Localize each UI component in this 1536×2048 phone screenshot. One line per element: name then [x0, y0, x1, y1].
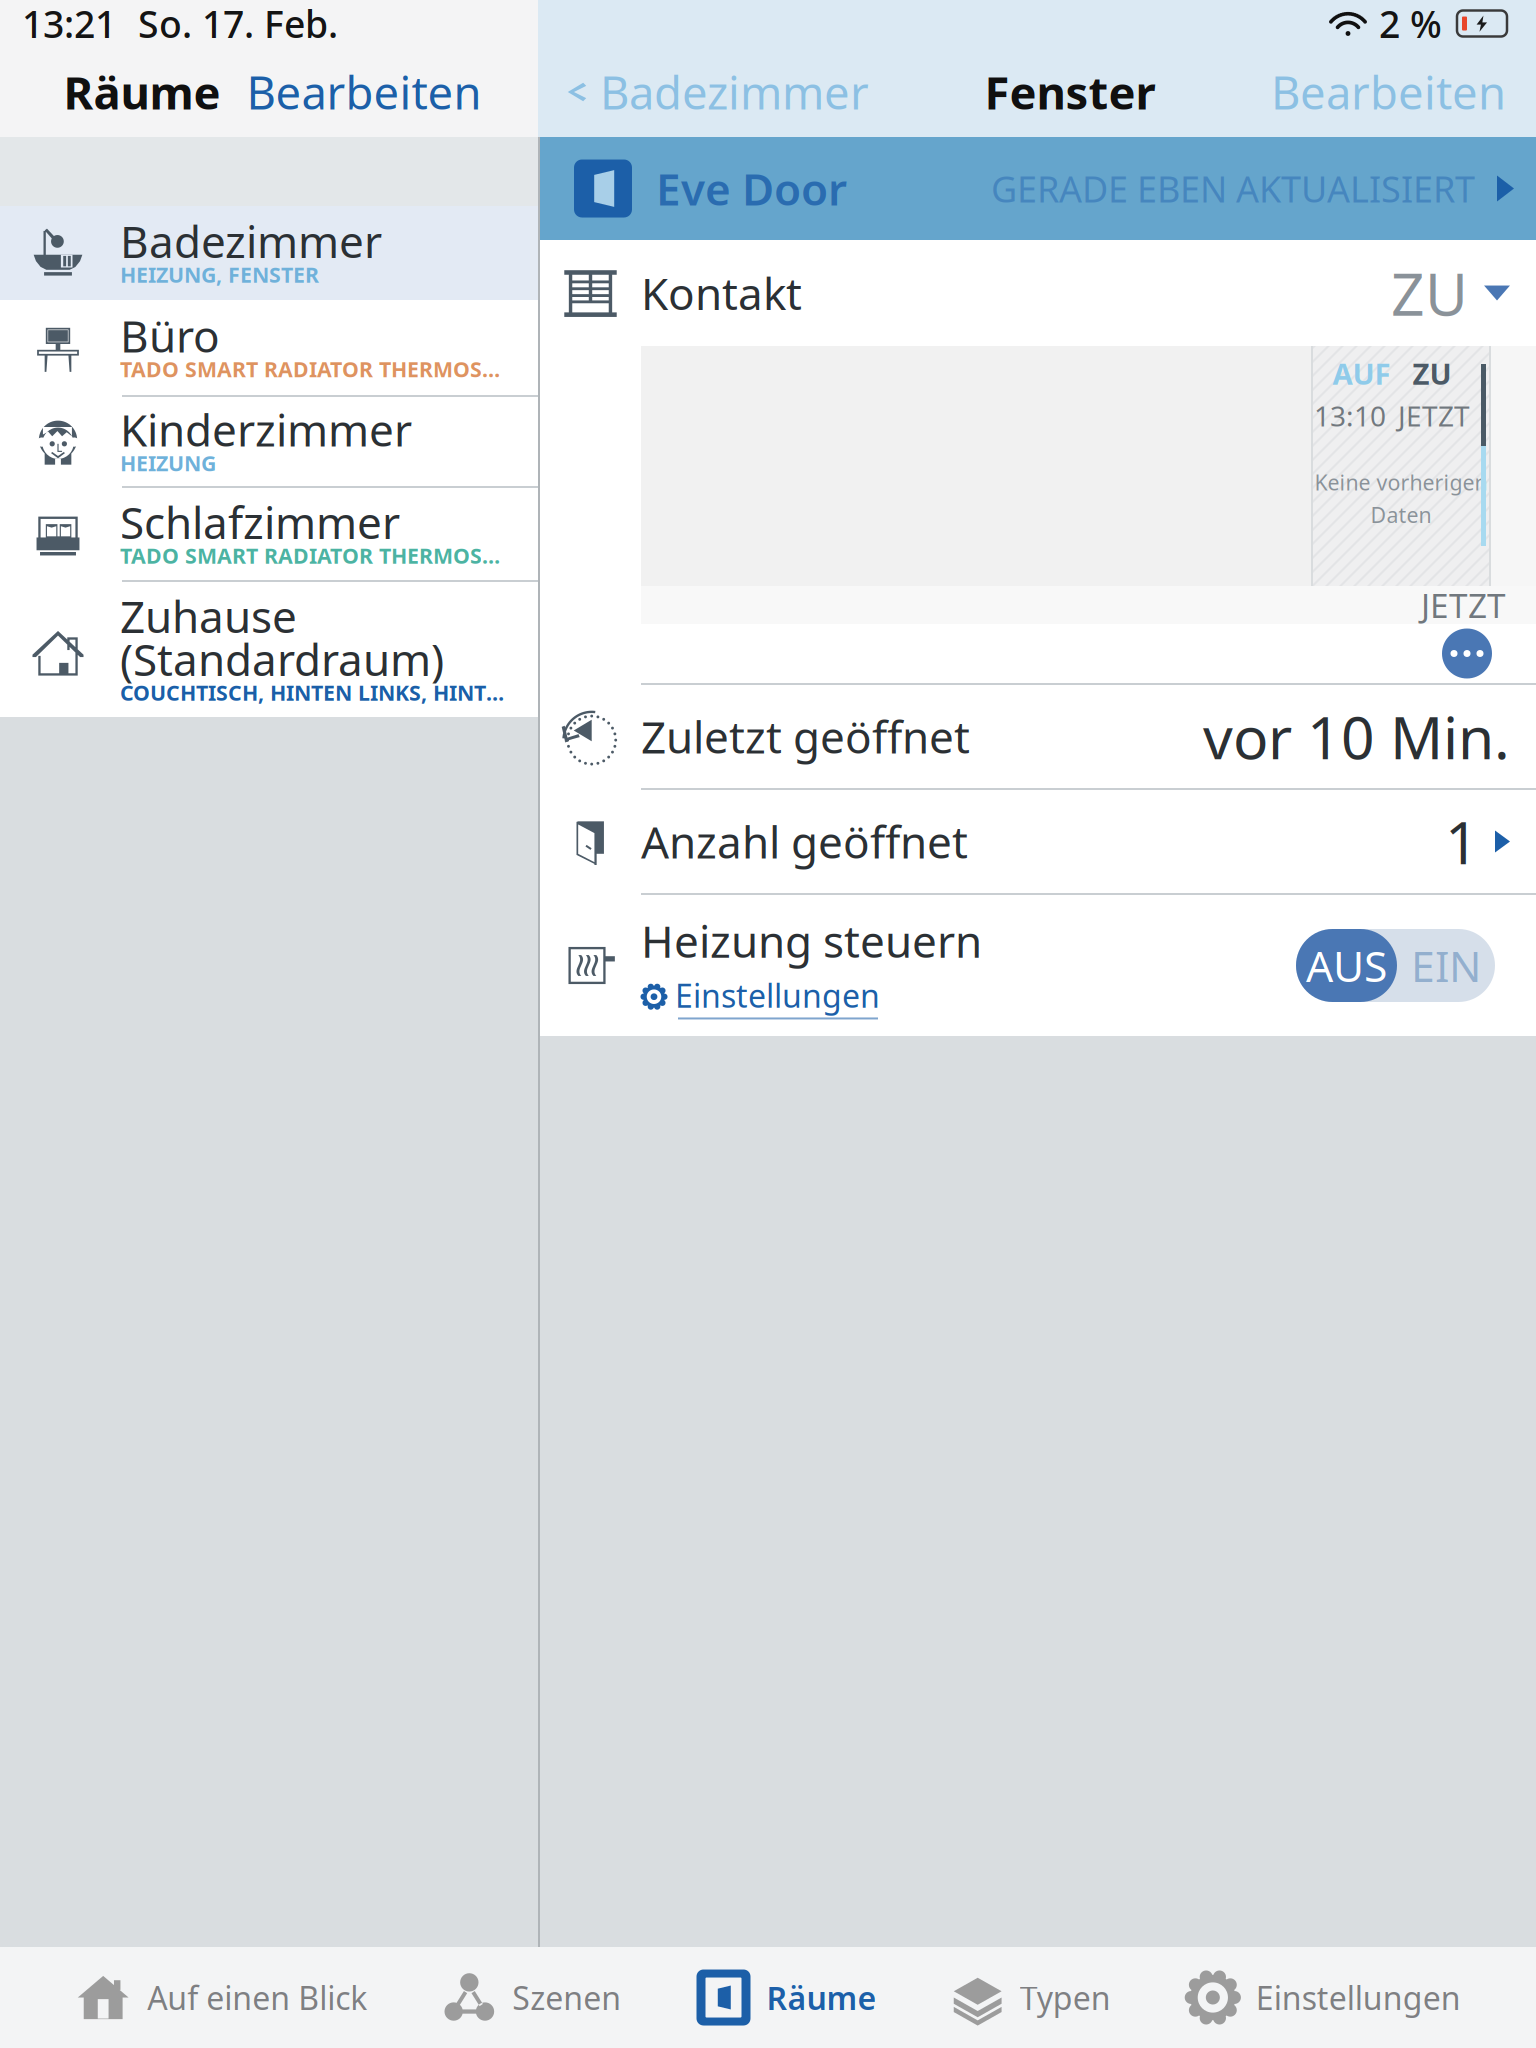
staticText: Fenster: [984, 62, 1155, 122]
staticText: Kontakt: [641, 264, 802, 322]
button[interactable]: Zuletzt geöffnet: [540, 685, 1536, 788]
staticText: TADO SMART RADIATOR THERMOSTAT VA…: [120, 541, 504, 570]
button[interactable]: Räume: [696, 1947, 876, 2048]
staticText: vor 10 Min.: [1203, 697, 1510, 775]
staticText: Bearbeiten: [1271, 62, 1506, 122]
button[interactable]: Typen: [952, 1947, 1111, 2048]
staticText: Einstellungen: [675, 974, 880, 1016]
staticText: Auf einen Blick: [147, 1976, 367, 2019]
staticText: AUS: [1306, 937, 1387, 994]
button[interactable]: Badezimmer: [0, 206, 538, 300]
button[interactable]: Bearbeiten: [220, 47, 497, 137]
button[interactable]: Bearbeiten: [1261, 62, 1536, 122]
staticText: Szenen: [512, 1976, 621, 2019]
staticText: EIN: [1411, 937, 1481, 994]
staticText: Einstellungen: [1256, 1976, 1461, 2019]
staticText: Schlafzimmer: [120, 493, 400, 551]
staticText: HEIZUNG, FENSTER: [120, 260, 319, 289]
staticText: ZU: [1412, 354, 1451, 393]
staticText: Heizung steuern: [641, 911, 982, 970]
staticText: Eve Door: [656, 159, 847, 218]
button[interactable]: Eve Door: [540, 137, 1536, 240]
staticText: Kinderzimmer: [120, 400, 412, 459]
staticText: Anzahl geöffnet: [641, 812, 968, 871]
staticText: (Standardraum): [120, 630, 444, 688]
button[interactable]: Zuhause: [0, 582, 538, 717]
staticText: Typen: [1020, 1976, 1111, 2019]
staticText: HEIZUNG: [120, 449, 216, 477]
staticText: 13:21: [22, 0, 116, 48]
staticText: COUCHTISCH, HINTEN LINKS, HINTEN REC…: [120, 678, 504, 707]
staticText: 1: [1445, 802, 1479, 880]
button[interactable]: Büro: [0, 300, 538, 395]
staticText: Zuhause: [120, 587, 297, 645]
staticText: JETZT: [1421, 583, 1506, 627]
staticText: 13:10: [1314, 397, 1386, 434]
staticText: 2 %: [1379, 0, 1442, 48]
button[interactable]: Kinderzimmer: [0, 397, 538, 486]
button[interactable]: Schlafzimmer: [0, 488, 538, 580]
staticText: Räume: [766, 1976, 876, 2019]
button[interactable]: Heizung steuern: [540, 895, 1536, 1036]
staticText: AUF: [1332, 354, 1390, 393]
staticText: Badezimmer: [120, 212, 382, 270]
staticText: Keine vorherigen: [1314, 468, 1487, 496]
button[interactable]: Anzahl geöffnet: [540, 790, 1536, 893]
staticText: Daten: [1370, 500, 1431, 529]
staticText: Büro: [120, 306, 220, 365]
button[interactable]: Mehr: [1442, 628, 1492, 678]
button[interactable]: Einstellungen: [1186, 1947, 1461, 2048]
staticText: So. 17. Feb.: [138, 0, 338, 48]
staticText: Zuletzt geöffnet: [641, 707, 970, 766]
staticText: TADO SMART RADIATOR THERMOSTAT VA…: [120, 355, 504, 383]
button[interactable]: Auf einen Blick: [75, 1947, 367, 2048]
staticText: Räume: [63, 62, 220, 122]
button[interactable]: Szenen: [442, 1947, 621, 2048]
staticText: ZU: [1391, 254, 1468, 332]
button[interactable]: Badezimmer: [538, 62, 879, 122]
staticText: Badezimmer: [600, 62, 869, 122]
button[interactable]: Kontakt: [540, 240, 1536, 346]
staticText: GERADE EBEN AKTUALISIERT: [991, 165, 1475, 212]
staticText: Bearbeiten: [246, 62, 481, 122]
staticText: JETZT: [1398, 397, 1470, 434]
